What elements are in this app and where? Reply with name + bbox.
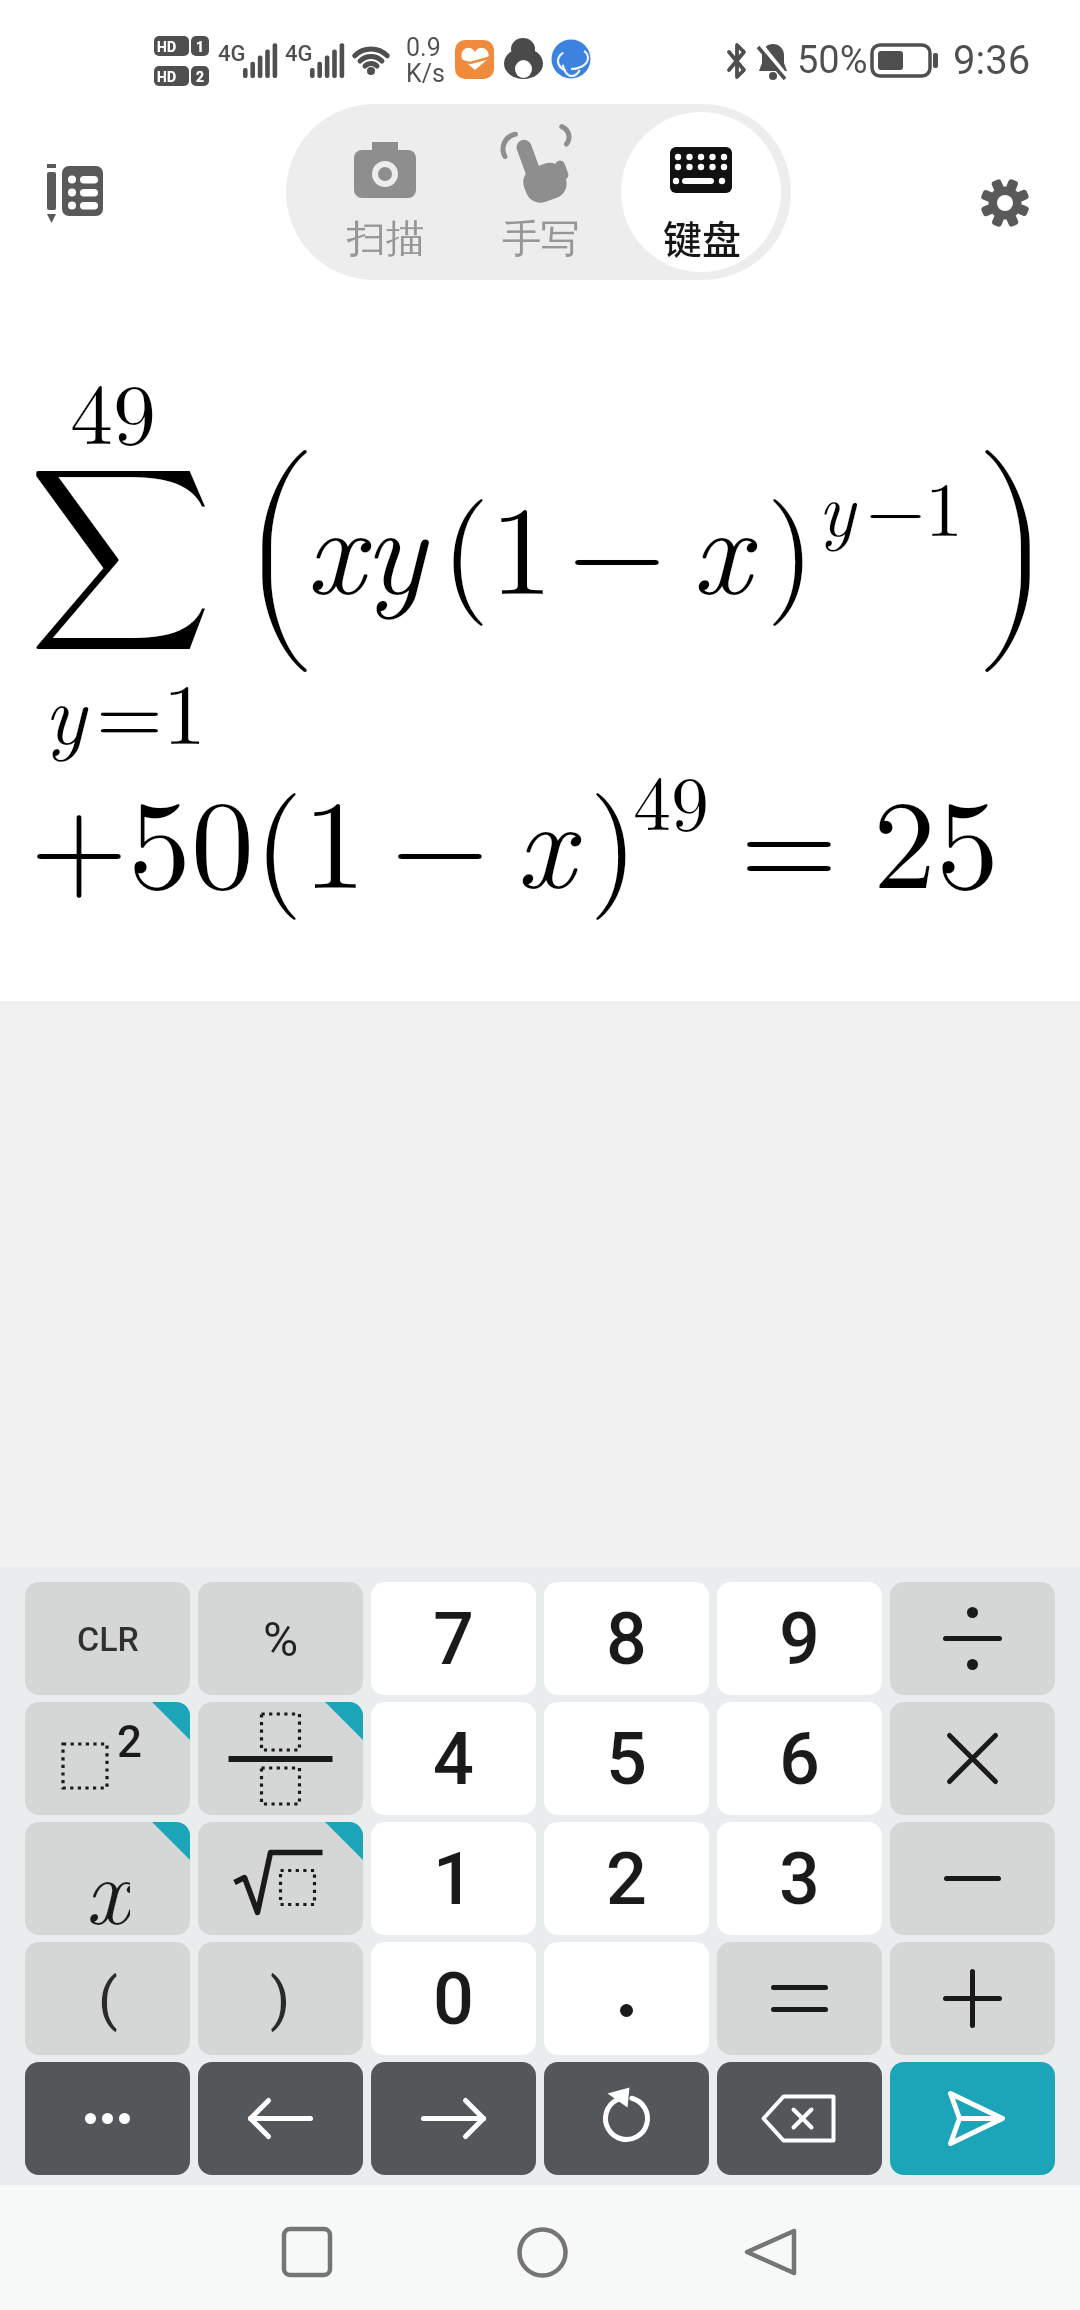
- staticText: 4G: [285, 41, 313, 67]
- staticText: 0: [433, 1957, 474, 2041]
- button[interactable]: [25, 1702, 190, 1815]
- staticText: ): [270, 1965, 291, 2033]
- button[interactable]: [198, 1822, 363, 1935]
- staticText: 4: [433, 1717, 474, 1801]
- button[interactable]: [25, 2062, 190, 2175]
- button[interactable]: [626, 110, 776, 275]
- button[interactable]: [975, 173, 1035, 233]
- staticText: 2: [117, 1716, 143, 1768]
- button[interactable]: CLR: [25, 1582, 190, 1695]
- button[interactable]: [280, 2225, 335, 2280]
- button[interactable]: 1: [371, 1822, 536, 1935]
- button[interactable]: 7: [371, 1582, 536, 1695]
- button[interactable]: [198, 2062, 363, 2175]
- button[interactable]: [515, 2225, 570, 2280]
- staticText: HD: [157, 39, 177, 55]
- staticText: 7: [433, 1597, 474, 1681]
- button[interactable]: 8: [544, 1582, 709, 1695]
- button[interactable]: [890, 1702, 1055, 1815]
- button[interactable]: 0: [371, 1942, 536, 2055]
- button[interactable]: ): [198, 1942, 363, 2055]
- button[interactable]: 5: [544, 1702, 709, 1815]
- staticText: 2: [196, 69, 205, 85]
- button[interactable]: [30, 150, 120, 235]
- staticText: 9:36: [953, 37, 1031, 84]
- staticText: 4G: [218, 41, 246, 67]
- staticText: 9: [779, 1597, 820, 1681]
- staticText: K/s: [406, 59, 445, 88]
- button[interactable]: [544, 2062, 709, 2175]
- button[interactable]: 扫描: [310, 110, 460, 275]
- staticText: 1: [196, 39, 205, 55]
- staticText: 5: [606, 1717, 647, 1801]
- staticText: %: [263, 1611, 299, 1667]
- staticText: 2: [606, 1837, 647, 1921]
- staticText: 扫描: [347, 214, 425, 263]
- button[interactable]: 9: [717, 1582, 882, 1695]
- staticText: 8: [606, 1597, 647, 1681]
- staticText: 手写: [502, 214, 580, 263]
- button[interactable]: 2: [544, 1822, 709, 1935]
- button[interactable]: [25, 1702, 190, 1815]
- button[interactable]: [198, 1702, 363, 1815]
- button[interactable]: [890, 1582, 1055, 1695]
- button[interactable]: 6: [717, 1702, 882, 1815]
- staticText: 50%: [797, 38, 868, 83]
- staticText: 0.9: [406, 33, 441, 62]
- staticText: 3: [779, 1837, 820, 1921]
- button[interactable]: [717, 2062, 882, 2175]
- button[interactable]: %: [198, 1582, 363, 1695]
- button[interactable]: [890, 2062, 1055, 2175]
- button[interactable]: x: [25, 1822, 190, 1935]
- button[interactable]: [744, 2225, 800, 2280]
- button[interactable]: 手写: [465, 110, 615, 275]
- staticText: 1: [433, 1837, 474, 1921]
- button[interactable]: 3: [717, 1822, 882, 1935]
- button[interactable]: [890, 1942, 1055, 2055]
- button[interactable]: [544, 1942, 709, 2055]
- button[interactable]: 4: [371, 1702, 536, 1815]
- staticText: CLR: [77, 1619, 139, 1659]
- button[interactable]: (: [25, 1942, 190, 2055]
- button[interactable]: [371, 2062, 536, 2175]
- button[interactable]: [890, 1822, 1055, 1935]
- button[interactable]: [717, 1942, 882, 2055]
- staticText: HD: [157, 69, 177, 85]
- staticText: (: [98, 1965, 118, 2033]
- staticText: 6: [779, 1717, 820, 1801]
- staticText: x: [85, 1822, 130, 1929]
